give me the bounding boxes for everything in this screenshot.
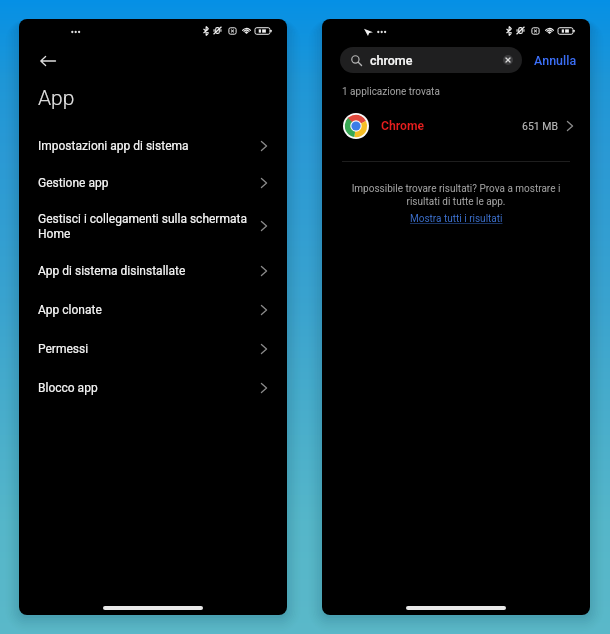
staticText: App: [38, 86, 75, 111]
staticText: Annulla: [534, 53, 577, 68]
staticText: App clonate: [38, 303, 250, 317]
staticText: Permessi: [38, 342, 250, 356]
button[interactable]: Back: [30, 43, 66, 79]
button[interactable]: Chrome: [322, 107, 590, 144]
button[interactable]: chrome: [340, 47, 522, 73]
staticText: Impostazioni app di sistema: [38, 139, 250, 153]
button[interactable]: App di sistema disinstallate: [19, 252, 287, 290]
button[interactable]: Gestisci i collegamenti sulla schermata …: [19, 207, 287, 245]
button[interactable]: Clear search: [501, 53, 515, 67]
staticText: Impossibile trovare risultati? Prova a m…: [340, 183, 572, 208]
staticText: chrome: [370, 53, 501, 68]
staticText: Gestione app: [38, 176, 250, 190]
button[interactable]: Impostazioni app di sistema: [19, 127, 287, 165]
staticText: App di sistema disinstallate: [38, 264, 250, 278]
staticText: 651 MB: [522, 120, 559, 132]
staticText: Mostra tutti i risultati: [410, 213, 503, 225]
button[interactable]: Permessi: [19, 330, 287, 368]
button[interactable]: Blocco app: [19, 369, 287, 407]
staticText: Gestisci i collegamenti sulla schermata …: [38, 212, 250, 241]
button[interactable]: Mostra tutti i risultati: [408, 212, 505, 226]
staticText: Chrome: [381, 119, 522, 133]
button[interactable]: Gestione app: [19, 164, 287, 202]
staticText: 1 applicazione trovata: [342, 86, 440, 98]
button[interactable]: App clonate: [19, 291, 287, 329]
staticText: Blocco app: [38, 381, 250, 395]
button[interactable]: Annulla: [530, 50, 580, 70]
